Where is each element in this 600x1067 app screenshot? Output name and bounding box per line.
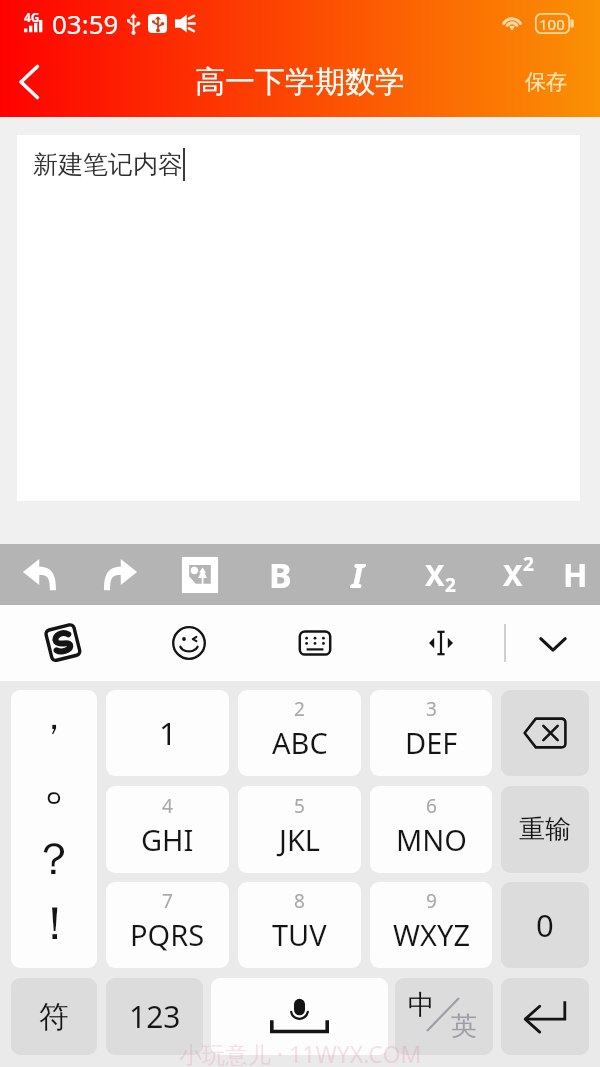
button[interactable]: 9 [370, 882, 492, 968]
staticText: JKL [279, 820, 321, 859]
button[interactable]: 4 [106, 786, 229, 873]
staticText: 小玩意儿 · 11WYX.COM [179, 1038, 422, 1067]
button[interactable]: 3 [370, 690, 492, 776]
staticText: 新建笔记内容 [33, 149, 183, 180]
staticText: 4G [24, 9, 40, 25]
staticText: ？ [32, 832, 76, 887]
button[interactable]: 7 [106, 882, 229, 968]
button[interactable]: 中 [395, 978, 493, 1055]
button[interactable]: 保存 [510, 47, 582, 117]
button[interactable]: Backspace [501, 690, 589, 776]
staticText: ！ [32, 895, 78, 953]
button[interactable]: X [480, 544, 556, 605]
button[interactable]: Move cursor [378, 605, 504, 681]
staticText: 3 [426, 696, 437, 722]
button[interactable]: 符 [11, 978, 97, 1055]
staticText: 8 [294, 888, 305, 914]
staticText: DEF [405, 723, 458, 762]
staticText: ， [36, 694, 72, 739]
staticText: 2 [523, 551, 534, 577]
staticText: 100 [539, 14, 565, 34]
button[interactable]: 6 [370, 786, 492, 873]
button[interactable]: 重输 [501, 786, 589, 873]
staticText: 4 [162, 793, 173, 819]
staticText: MNO [396, 820, 467, 859]
button[interactable]: X [402, 544, 478, 605]
button[interactable]: Back [1, 47, 57, 117]
button[interactable]: Sogou input [0, 605, 126, 681]
button[interactable]: Undo [2, 544, 78, 605]
button[interactable]: Insert image [162, 544, 238, 605]
staticText: 03:59 [52, 6, 119, 41]
staticText: 高一下学期数学 [195, 63, 405, 101]
staticText: 9 [426, 888, 437, 914]
staticText: 0 [536, 904, 554, 946]
button[interactable]: Emoji [126, 605, 252, 681]
staticText: I [351, 552, 365, 598]
staticText: TUV [272, 915, 327, 954]
button[interactable]: 2 [238, 690, 361, 776]
staticText: 123 [129, 996, 181, 1037]
staticText: 重输 [519, 813, 571, 846]
staticText: X [425, 555, 445, 594]
button[interactable]: I [320, 544, 396, 605]
staticText: 1 [159, 712, 177, 754]
staticText: 中 [408, 988, 435, 1022]
button[interactable]: Enter [501, 978, 589, 1055]
button[interactable]: 0 [501, 882, 589, 968]
button[interactable]: H [563, 544, 600, 605]
staticText: 保存 [525, 69, 567, 95]
staticText: 7 [162, 888, 173, 914]
button[interactable]: 1 [106, 690, 229, 776]
staticText: 6 [426, 793, 437, 819]
button[interactable]: Hide keyboard [506, 605, 600, 681]
staticText: 2 [445, 572, 456, 598]
staticText: H [563, 553, 588, 597]
button[interactable]: Voice input [211, 978, 388, 1055]
button[interactable]: 新建笔记内容 [17, 135, 580, 501]
staticText: GHI [141, 820, 194, 859]
button[interactable]: 123 [106, 978, 203, 1055]
staticText: 5 [294, 793, 305, 819]
staticText: WXYZ [393, 915, 470, 954]
button[interactable]: Redo [82, 544, 158, 605]
button[interactable]: Keyboard layout [252, 605, 378, 681]
staticText: PQRS [130, 915, 205, 954]
staticText: 。 [42, 744, 97, 813]
button[interactable]: 5 [238, 786, 361, 873]
staticText: 英 [451, 1010, 477, 1043]
staticText: B [269, 552, 292, 598]
staticText: ABC [272, 723, 328, 762]
button[interactable]: 8 [238, 882, 361, 968]
button[interactable]: ， [11, 690, 97, 968]
staticText: X [503, 555, 523, 594]
button[interactable]: B [242, 544, 318, 605]
staticText: 符 [39, 998, 69, 1036]
staticText: 2 [294, 696, 305, 722]
